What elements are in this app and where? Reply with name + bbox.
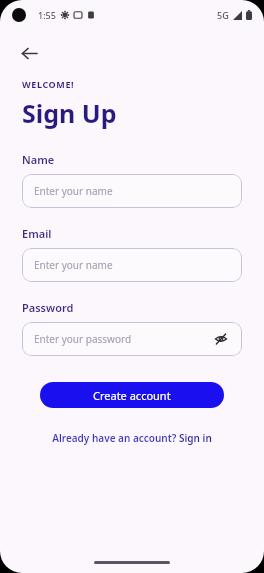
staticText: WELCOME! — [22, 78, 75, 90]
button[interactable]: Back — [14, 38, 44, 68]
button[interactable]: Already have an account? Sign in — [46, 428, 218, 448]
button[interactable]: Show password — [212, 330, 230, 348]
button[interactable]: Enter your name — [22, 174, 242, 208]
staticText: Email — [22, 226, 52, 241]
staticText: Sign Up — [22, 96, 117, 130]
staticText: Password — [22, 300, 74, 315]
staticText: 1:55 — [38, 9, 56, 21]
staticText: Already have an account? Sign in — [52, 431, 212, 445]
button[interactable]: Create account — [40, 382, 224, 408]
button[interactable]: Enter your name — [22, 248, 242, 282]
staticText: 5G — [217, 9, 229, 21]
staticText: Enter your password — [34, 332, 212, 346]
staticText: Name — [22, 152, 55, 167]
staticText: Enter your name — [34, 184, 230, 198]
staticText: Create account — [93, 388, 171, 403]
button[interactable]: Enter your password — [22, 322, 242, 356]
staticText: Enter your name — [34, 258, 230, 272]
